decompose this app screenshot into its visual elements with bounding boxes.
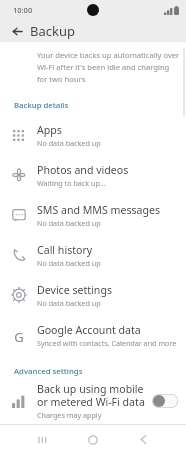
button[interactable]: Home xyxy=(68,425,118,454)
button[interactable]: Apps xyxy=(0,115,186,155)
staticText: Charges may apply xyxy=(37,410,102,420)
button[interactable]: Back up using mobile or metered Wi-Fi da… xyxy=(0,381,186,421)
staticText: No data backed up xyxy=(37,298,101,308)
staticText: No data backed up xyxy=(37,218,101,228)
staticText: Call history xyxy=(37,243,93,257)
button[interactable]: Photos and videos xyxy=(0,155,186,195)
staticText: Synced with contacts, Calendar and more xyxy=(37,338,177,348)
staticText: G xyxy=(14,328,24,342)
button[interactable]: Back xyxy=(9,23,25,39)
staticText: Apps xyxy=(37,123,62,137)
staticText: Backup xyxy=(30,22,75,40)
staticText: Your device backs up automatically over … xyxy=(37,50,180,84)
staticText: SMS and MMS messages xyxy=(37,203,161,217)
staticText: Backup details xyxy=(14,100,69,111)
staticText: Advanced settings xyxy=(14,366,83,377)
button[interactable]: SMS and MMS messages xyxy=(0,195,186,235)
button[interactable]: Device settings xyxy=(0,275,186,315)
button[interactable]: Back xyxy=(118,425,168,454)
staticText: 10:00 xyxy=(13,5,33,15)
staticText: Google Account data xyxy=(37,323,141,337)
staticText: Device settings xyxy=(37,283,112,297)
button[interactable]: Recents xyxy=(18,425,68,454)
staticText: Photos and videos xyxy=(37,163,129,177)
staticText: Waiting to back up... xyxy=(37,178,106,188)
staticText: No data backed up xyxy=(37,138,101,148)
staticText: No data backed up xyxy=(37,258,101,268)
button[interactable]: G xyxy=(0,315,186,355)
button[interactable]: Call history xyxy=(0,235,186,275)
staticText: Back up using mobile or metered Wi-Fi da… xyxy=(37,382,148,409)
